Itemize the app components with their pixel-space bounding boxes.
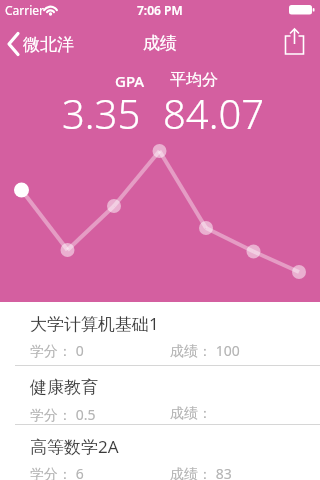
- staticText: 微北洋: [23, 34, 74, 55]
- staticText: 健康教育: [30, 377, 98, 398]
- button[interactable]: 大学计算机基础1: [0, 302, 320, 366]
- staticText: 成绩：: [170, 405, 212, 423]
- button[interactable]: 微北洋: [4, 28, 90, 60]
- button[interactable]: 高等数学2A: [0, 425, 320, 480]
- staticText: 成绩： 100: [170, 341, 240, 360]
- staticText: 平均分: [170, 70, 218, 90]
- staticText: 学分： 0: [30, 341, 84, 360]
- button[interactable]: [278, 24, 314, 60]
- staticText: Carrier: [5, 2, 45, 18]
- staticText: 成绩: [143, 33, 177, 54]
- staticText: 84.07: [163, 86, 265, 134]
- staticText: 大学计算机基础1: [30, 312, 159, 334]
- staticText: 学分： 0.5: [30, 405, 96, 424]
- staticText: GPA: [115, 71, 145, 91]
- button[interactable]: 健康教育: [0, 366, 320, 425]
- staticText: 学分： 6: [30, 464, 84, 480]
- staticText: 7:06 PM: [137, 2, 183, 18]
- staticText: 3.35: [62, 86, 141, 134]
- staticText: 成绩： 83: [170, 464, 232, 480]
- staticText: 高等数学2A: [30, 435, 119, 457]
